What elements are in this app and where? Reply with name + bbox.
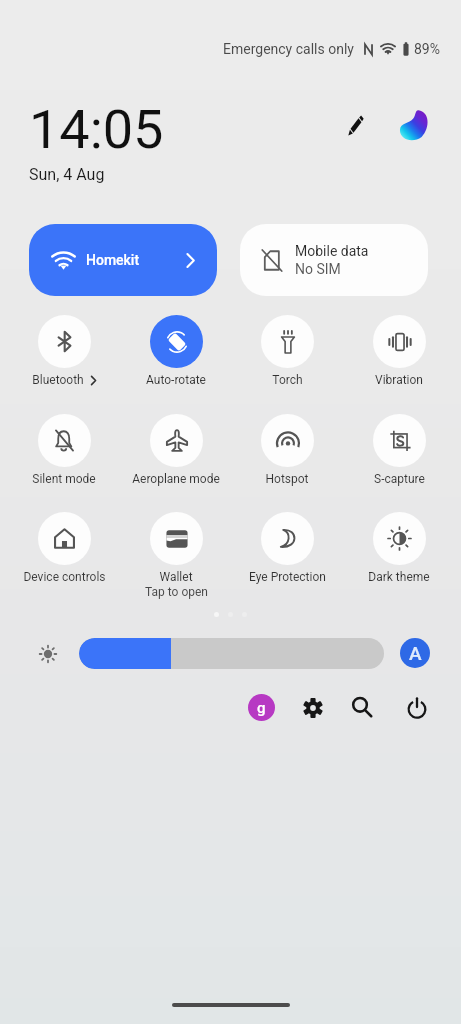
button[interactable]: Eye Protection (231, 512, 343, 584)
staticText: Homekit (86, 252, 140, 268)
staticText: Torch (272, 373, 303, 387)
button[interactable]: Auto-rotate (120, 315, 232, 387)
button[interactable]: Wallet (120, 512, 232, 599)
button[interactable]: Homekit (29, 224, 217, 296)
staticText: 14:05 (29, 98, 164, 161)
staticText: Tap to open (145, 585, 208, 599)
button[interactable]: Edit (341, 110, 371, 140)
staticText: Mobile data (295, 243, 369, 259)
staticText: Dark theme (368, 570, 430, 584)
staticText: Aeroplane mode (132, 472, 220, 486)
staticText: Vibration (375, 373, 423, 387)
staticText: Bluetooth (32, 373, 84, 387)
button[interactable]: S-capture (343, 414, 455, 486)
staticText: g (257, 699, 266, 717)
button[interactable]: Dark theme (343, 512, 455, 584)
button[interactable] (79, 638, 384, 669)
button[interactable]: Power (400, 691, 433, 724)
button[interactable]: Account (245, 691, 278, 724)
staticText: Hotspot (265, 472, 309, 486)
button[interactable]: Vibration (343, 315, 455, 387)
button[interactable]: Settings (296, 691, 329, 724)
staticText: Auto-rotate (146, 373, 206, 387)
other: Brightness (40, 646, 56, 662)
staticText: Eye Protection (249, 570, 326, 584)
button[interactable]: Hotspot (231, 414, 343, 486)
button[interactable]: A (400, 638, 430, 668)
button[interactable]: Mobile data (240, 224, 428, 296)
button[interactable]: Torch (231, 315, 343, 387)
staticText: A (409, 642, 422, 664)
button[interactable]: Silent mode (8, 414, 120, 486)
button[interactable]: Galaxy AI (396, 107, 433, 144)
button[interactable]: Search (345, 690, 378, 723)
staticText: Wallet (159, 570, 193, 584)
button[interactable]: Bluetooth (8, 315, 120, 387)
staticText: No SIM (295, 261, 341, 277)
staticText: Silent mode (32, 472, 96, 486)
staticText: Sun, 4 Aug (29, 165, 105, 184)
staticText: Emergency calls only (223, 41, 354, 57)
staticText: S-capture (374, 472, 425, 486)
button[interactable]: Device controls (8, 512, 120, 584)
staticText: 89% (414, 41, 440, 57)
button[interactable]: Aeroplane mode (120, 414, 232, 486)
staticText: Device controls (23, 570, 106, 584)
